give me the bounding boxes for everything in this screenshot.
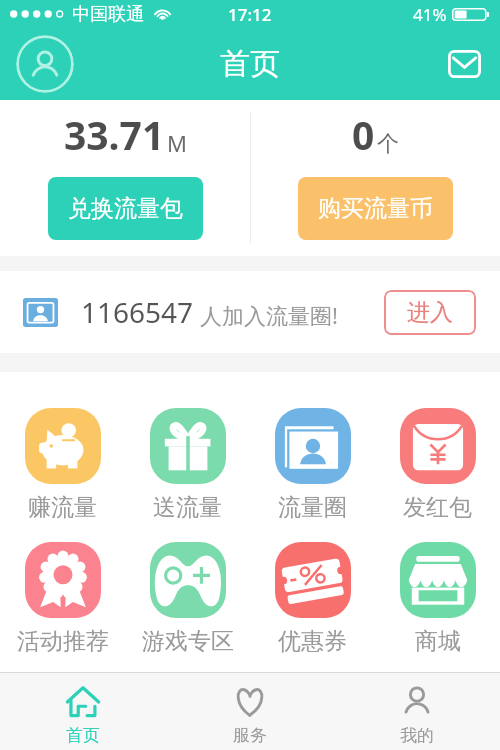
staticText: 购买流量币 [318, 194, 433, 223]
button[interactable]: 进入 [384, 290, 476, 335]
staticText: 33.71 [64, 108, 165, 161]
staticText: 首页 [66, 725, 100, 746]
button[interactable]: 我的 [333, 673, 500, 750]
staticText: 个 [377, 130, 399, 158]
staticText: 游戏专区 [142, 627, 234, 656]
staticText: 活动推荐 [17, 627, 109, 656]
button[interactable]: 购买流量币 [298, 177, 453, 240]
button[interactable]: 1166547 [0, 271, 500, 353]
button[interactable]: 游戏专区 [125, 542, 250, 656]
button[interactable]: Messages [444, 44, 484, 84]
button[interactable]: 兑换流量包 [48, 177, 203, 240]
button[interactable]: 流量圈 [250, 408, 375, 522]
staticText: 人加入流量圈! [200, 300, 338, 330]
staticText: 1166547 [81, 293, 194, 331]
staticText: 0 [352, 108, 375, 161]
staticText: M [167, 128, 187, 158]
staticText: 发红包 [403, 493, 472, 522]
staticText: 送流量 [153, 493, 222, 522]
staticText: 进入 [407, 298, 453, 327]
staticText: 17:12 [228, 3, 272, 26]
staticText: 商城 [415, 627, 461, 656]
staticText: 我的 [400, 725, 434, 746]
button[interactable]: 发红包 [375, 408, 500, 522]
button[interactable]: 首页 [0, 673, 166, 750]
button[interactable]: 活动推荐 [0, 542, 125, 656]
staticText: 中国联通 [72, 3, 144, 26]
staticText: 兑换流量包 [68, 194, 183, 223]
button[interactable]: 送流量 [125, 408, 250, 522]
button[interactable]: 赚流量 [0, 408, 125, 522]
staticText: 服务 [233, 725, 267, 746]
button[interactable]: Profile [16, 35, 74, 93]
button[interactable]: 商城 [375, 542, 500, 656]
button[interactable]: 服务 [166, 673, 333, 750]
staticText: 赚流量 [28, 493, 97, 522]
staticText: 优惠券 [278, 627, 347, 656]
staticText: 首页 [220, 45, 280, 83]
staticText: 流量圈 [278, 493, 347, 522]
staticText: 41% [413, 3, 447, 26]
button[interactable]: 优惠券 [250, 542, 375, 656]
